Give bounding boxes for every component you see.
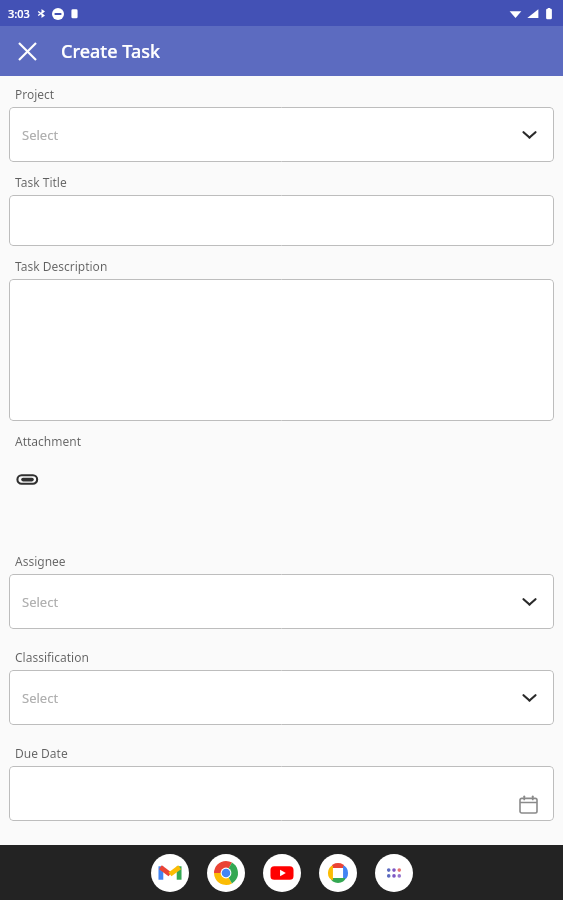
- staticText: Project: [15, 86, 55, 102]
- button[interactable]: Select: [9, 574, 554, 629]
- button[interactable]: [9, 195, 554, 246]
- button[interactable]: All apps: [375, 854, 413, 892]
- button[interactable]: YouTube: [263, 854, 301, 892]
- staticText: Create Task: [61, 39, 160, 64]
- button[interactable]: Chrome: [207, 854, 245, 892]
- button[interactable]: Add attachment: [12, 464, 42, 494]
- staticText: Classification: [15, 649, 89, 665]
- staticText: Task Description: [15, 258, 108, 274]
- staticText: Select: [22, 593, 59, 611]
- staticText: Due Date: [15, 745, 68, 761]
- staticText: Select: [22, 689, 59, 707]
- staticText: Attachment: [15, 433, 81, 449]
- button[interactable]: Select: [9, 107, 554, 162]
- staticText: Select: [22, 126, 59, 144]
- staticText: Assignee: [15, 553, 66, 569]
- button[interactable]: Gmail: [151, 854, 189, 892]
- staticText: 3:03: [8, 6, 30, 21]
- button[interactable]: [9, 279, 554, 421]
- button[interactable]: Google Photos: [319, 854, 357, 892]
- button[interactable]: Select: [9, 670, 554, 725]
- button[interactable]: Pick due date: [9, 766, 554, 821]
- button[interactable]: Close: [8, 32, 46, 70]
- staticText: Task Title: [15, 174, 67, 190]
